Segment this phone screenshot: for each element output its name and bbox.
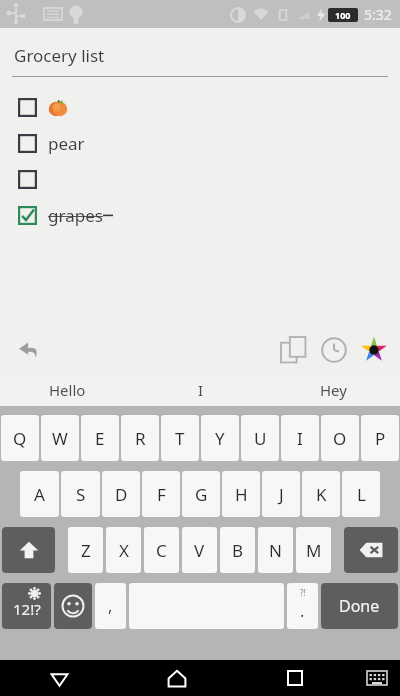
staticText: H [235, 483, 248, 506]
button[interactable]: E [81, 415, 119, 461]
button[interactable]: Q [1, 415, 39, 461]
button[interactable]: Checked item [0, 197, 400, 233]
button[interactable]: L [342, 471, 380, 517]
staticText: . [300, 600, 305, 622]
button[interactable]: I [281, 415, 319, 461]
button[interactable]: X [106, 527, 141, 573]
button[interactable]: Y [201, 415, 239, 461]
button[interactable]: Unchecked item [0, 125, 400, 161]
button[interactable]: Period [287, 583, 318, 629]
staticText: 100 [335, 9, 351, 21]
staticText: G [195, 483, 208, 506]
button[interactable]: Colour [354, 330, 394, 370]
staticText: Z [81, 539, 91, 562]
staticText: Done [339, 595, 380, 617]
button[interactable]: K [302, 471, 340, 517]
button[interactable]: R [121, 415, 159, 461]
button[interactable]: I [134, 374, 267, 406]
staticText: X [119, 539, 129, 562]
button[interactable]: Undo [12, 333, 46, 367]
staticText: M [306, 539, 322, 562]
button[interactable]: T [161, 415, 199, 461]
button[interactable]: Unchecked item [18, 98, 37, 117]
staticText: O [333, 427, 347, 450]
staticText: W [52, 427, 68, 450]
staticText: E [95, 427, 105, 450]
button[interactable]: Reminder [314, 330, 354, 370]
button[interactable]: Checked item [18, 206, 37, 225]
button[interactable]: Done [321, 583, 398, 629]
button[interactable]: C [144, 527, 179, 573]
staticText: I [198, 380, 204, 400]
button[interactable]: Emoji [54, 583, 92, 629]
staticText: I [297, 427, 303, 450]
button[interactable]: S [61, 471, 100, 517]
staticText: K [316, 483, 327, 506]
button[interactable]: G [182, 471, 220, 517]
button[interactable]: W [41, 415, 79, 461]
button[interactable]: D [102, 471, 140, 517]
button[interactable]: Unchecked item [18, 170, 37, 189]
staticText: Q [13, 427, 27, 450]
staticText: R [135, 427, 146, 450]
button[interactable]: Symbols [2, 583, 51, 629]
staticText: V [194, 539, 205, 562]
staticText: S [76, 483, 86, 506]
staticText: F [157, 483, 166, 506]
staticText: Hey [320, 380, 347, 400]
staticText: Grocery list [14, 44, 105, 67]
staticText: grapes [48, 204, 103, 227]
staticText: pear [48, 132, 85, 155]
staticText: L [357, 483, 366, 506]
staticText: A [34, 483, 45, 506]
button[interactable]: Copy [274, 330, 314, 370]
button[interactable]: F [142, 471, 180, 517]
staticText: B [232, 539, 244, 562]
button[interactable]: Backspace [344, 527, 398, 573]
staticText: 5:32 [364, 5, 392, 24]
button[interactable]: Recents [236, 660, 354, 696]
staticText: P [375, 427, 386, 450]
button[interactable]: Unchecked item [18, 134, 37, 153]
button[interactable]: U [241, 415, 279, 461]
button[interactable]: A [20, 471, 59, 517]
staticText: Hello [49, 380, 86, 400]
button[interactable]: Unchecked item [0, 89, 400, 125]
button[interactable]: O [321, 415, 359, 461]
staticText: T [175, 427, 185, 450]
staticText: , [108, 595, 113, 617]
staticText: 12!? [13, 599, 41, 619]
button[interactable]: V [182, 527, 217, 573]
staticText: U [254, 427, 267, 450]
button[interactable]: Keyboard [354, 660, 400, 696]
staticText: N [269, 539, 282, 562]
button[interactable]: H [222, 471, 260, 517]
button[interactable]: Hello [0, 374, 134, 406]
button[interactable]: Unchecked item [0, 161, 400, 197]
button[interactable]: B [220, 527, 255, 573]
button[interactable]: P [361, 415, 399, 461]
button[interactable]: M [296, 527, 331, 573]
staticText: D [115, 483, 128, 506]
button[interactable]: Back [0, 660, 118, 696]
button[interactable]: Z [68, 527, 103, 573]
button[interactable]: N [258, 527, 293, 573]
button[interactable]: Comma [95, 583, 126, 629]
button[interactable]: Hey [267, 374, 400, 406]
staticText: J [279, 483, 284, 506]
staticText: ?! [300, 587, 306, 598]
button[interactable]: J [262, 471, 300, 517]
button[interactable]: Shift [2, 527, 55, 573]
staticText: C [156, 539, 167, 562]
button[interactable]: Home [118, 660, 236, 696]
staticText: Y [215, 427, 225, 450]
